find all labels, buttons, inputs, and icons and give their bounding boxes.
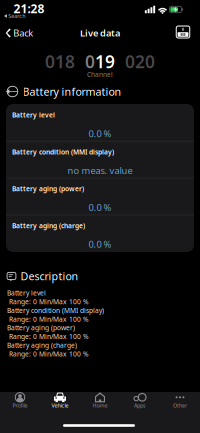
button[interactable]: Other: [160, 391, 200, 408]
button[interactable]: Home: [80, 391, 120, 408]
staticText: Battery information: [22, 84, 121, 99]
staticText: 0.0 %: [88, 238, 111, 250]
staticText: Battery condition (MMI display): [7, 306, 104, 315]
staticText: Vehicle: [51, 402, 68, 409]
button[interactable]: Vehicle: [40, 391, 80, 408]
staticText: 21:28: [13, 0, 44, 16]
staticText: Battery level: [7, 288, 46, 297]
staticText: Search: [8, 12, 25, 20]
staticText: Battery aging (power): [7, 323, 75, 332]
staticText: 0.0 %: [88, 201, 111, 213]
staticText: 018: [45, 50, 75, 73]
staticText: 0: [85, 50, 95, 73]
button[interactable]: Back to Search: [4, 12, 25, 20]
button[interactable]: Channel picker: [40, 50, 160, 73]
staticText: Range: 0 Min/Max 100 %: [7, 315, 89, 323]
staticText: Battery level: [12, 110, 55, 119]
staticText: Apps: [134, 402, 146, 409]
staticText: Channel: [87, 70, 113, 79]
staticText: Battery aging (charge): [12, 221, 85, 230]
button[interactable]: Measured values: [176, 26, 190, 38]
staticText: 19: [95, 50, 115, 73]
staticText: Range: 0 Min/Max 100 %: [7, 297, 89, 306]
staticText: Live data: [80, 27, 120, 39]
staticText: Range: 0 Min/Max 100 %: [7, 349, 89, 358]
staticText: Other: [173, 402, 187, 409]
button[interactable]: Profile: [0, 391, 40, 408]
button[interactable]: Apps: [120, 391, 160, 408]
staticText: Back: [13, 27, 33, 39]
button[interactable]: Back: [6, 27, 33, 39]
staticText: Battery condition (MMI display): [12, 147, 114, 156]
staticText: Battery aging (charge): [7, 341, 77, 350]
staticText: 0.0 %: [88, 127, 111, 140]
staticText: 020: [125, 50, 155, 73]
staticText: no meas. value: [67, 164, 132, 177]
staticText: Home: [92, 402, 107, 409]
staticText: Battery aging (power): [12, 184, 84, 193]
staticText: Range: 0 Min/Max 100 %: [7, 332, 89, 341]
staticText: Description: [20, 269, 78, 283]
staticText: Profile: [12, 402, 27, 409]
